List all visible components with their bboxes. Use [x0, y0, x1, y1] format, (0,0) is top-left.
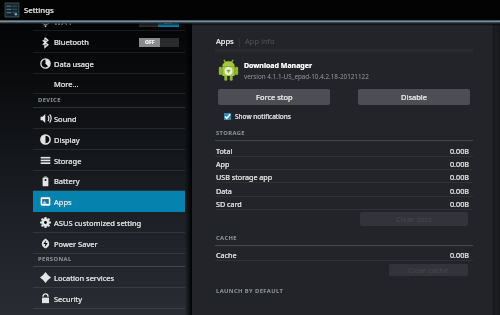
- staticText: ASUS customized setting: [54, 218, 142, 228]
- staticText: LAUNCH BY DEFAULT: [216, 287, 284, 295]
- button[interactable]: Wi-Fi: [33, 13, 185, 31]
- staticText: PERSONAL: [38, 255, 72, 263]
- staticText: |: [237, 36, 242, 47]
- staticText: CACHE: [216, 234, 238, 242]
- staticText: 0.00B: [450, 172, 469, 182]
- button[interactable]: Location services: [33, 267, 185, 288]
- staticText: Clear cache: [408, 265, 449, 275]
- button[interactable]: Force stop: [218, 89, 330, 105]
- button[interactable]: Clear cache: [389, 264, 468, 276]
- staticText: OFF: [145, 39, 155, 46]
- button[interactable]: Display: [33, 129, 185, 150]
- button[interactable]: Data usage: [33, 53, 185, 74]
- staticText: Settings: [24, 5, 54, 16]
- staticText: Location services: [54, 273, 115, 283]
- staticText: App info: [245, 36, 275, 46]
- staticText: Data: [216, 186, 232, 196]
- button[interactable]: Disable: [358, 89, 470, 105]
- staticText: More...: [54, 79, 79, 89]
- button[interactable]: Apps: [216, 35, 275, 47]
- button[interactable]: More...: [33, 74, 185, 94]
- staticText: 0.00B: [450, 159, 469, 169]
- staticText: 0.00B: [450, 250, 469, 260]
- staticText: Download Manager: [244, 61, 313, 71]
- button[interactable]: SD card: [215, 197, 473, 210]
- other: Wi-Fi toggle: [139, 18, 179, 27]
- staticText: Security: [54, 294, 83, 304]
- button[interactable]: Battery: [33, 171, 185, 191]
- staticText: Power Saver: [54, 239, 98, 249]
- staticText: 0.00B: [450, 199, 469, 209]
- button[interactable]: Storage: [33, 150, 185, 171]
- staticText: Bluetooth: [54, 37, 89, 47]
- staticText: Wi-Fi: [54, 17, 72, 27]
- staticText: DEVICE: [38, 96, 61, 104]
- staticText: Storage: [54, 156, 82, 166]
- staticText: App: [216, 159, 230, 169]
- staticText: SD card: [216, 199, 242, 209]
- other: Settings app icon: [4, 2, 20, 18]
- button[interactable]: Data: [215, 184, 473, 197]
- button[interactable]: Toggle Bluetooth: [139, 38, 179, 47]
- staticText: STORAGE: [216, 129, 245, 137]
- staticText: USB storage app: [216, 172, 273, 182]
- button[interactable]: Show notifications: [224, 111, 291, 121]
- staticText: Cache: [216, 250, 237, 260]
- staticText: Clear data: [396, 214, 432, 224]
- staticText: Sound: [54, 114, 77, 124]
- staticText: 0.00B: [450, 146, 469, 156]
- button[interactable]: ASUS customized setting: [33, 212, 185, 233]
- button[interactable]: Security: [33, 288, 185, 309]
- staticText: Force stop: [256, 92, 293, 102]
- button[interactable]: USB storage app: [215, 170, 473, 183]
- staticText: Apps: [216, 36, 234, 46]
- staticText: Show notifications: [235, 112, 291, 121]
- staticText: Data usage: [54, 59, 94, 69]
- button[interactable]: Bluetooth: [33, 31, 185, 53]
- button[interactable]: Power Saver: [33, 233, 185, 254]
- staticText: Disable: [401, 92, 427, 102]
- button[interactable]: Cache: [215, 248, 473, 261]
- staticText: version 4.1.1-US_epad-10.4.2.18-20121122: [244, 72, 369, 81]
- staticText: Apps: [54, 197, 72, 207]
- button[interactable]: Apps: [33, 191, 185, 212]
- staticText: Display: [54, 135, 80, 145]
- button[interactable]: Sound: [33, 108, 185, 129]
- staticText: Battery: [54, 176, 80, 186]
- staticText: Total: [216, 146, 233, 156]
- button[interactable]: Total: [215, 144, 473, 157]
- button[interactable]: App: [215, 157, 473, 170]
- staticText: ON: [164, 19, 173, 26]
- staticText: 0.00B: [450, 186, 469, 196]
